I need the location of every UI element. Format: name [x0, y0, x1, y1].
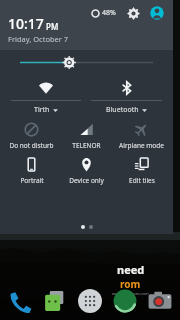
button[interactable]: Device only [59, 157, 114, 185]
staticText: Do not disturb [9, 141, 54, 150]
button[interactable]: User [149, 5, 165, 21]
button[interactable]: Camera [145, 286, 175, 316]
staticText: Edit tiles [129, 176, 155, 185]
staticText: PM [46, 21, 59, 32]
button[interactable]: Bluetooth [91, 80, 162, 115]
button[interactable]: TELENOR [59, 122, 114, 150]
staticText: Bluetooth [106, 105, 139, 115]
staticText: TELENOR [72, 141, 101, 150]
staticText: need [117, 262, 145, 277]
button[interactable]: Apps [75, 286, 105, 316]
button[interactable]: Do not disturb [4, 122, 59, 150]
button[interactable]: Airplane mode [114, 122, 169, 150]
staticText: rom [120, 277, 141, 291]
button[interactable]: Edit tiles [114, 157, 169, 185]
staticText: Tirth [34, 105, 50, 115]
button[interactable]: Messaging [40, 286, 70, 316]
button[interactable]: Phone [5, 286, 35, 316]
button[interactable]: Settings [125, 5, 141, 21]
button[interactable]: Browser [110, 286, 140, 316]
staticText: www.needrom.com [112, 291, 149, 296]
staticText: 48% [102, 8, 116, 18]
button[interactable]: Brightness [0, 50, 173, 75]
staticText: Device only [69, 176, 104, 185]
staticText: 10:17 [8, 14, 44, 33]
button[interactable]: Portrait [4, 157, 59, 185]
staticText: Friday, October 7 [8, 34, 69, 44]
button[interactable]: Tirth [11, 80, 81, 115]
staticText: Airplane mode [119, 141, 164, 150]
staticText: Portrait [20, 176, 44, 185]
